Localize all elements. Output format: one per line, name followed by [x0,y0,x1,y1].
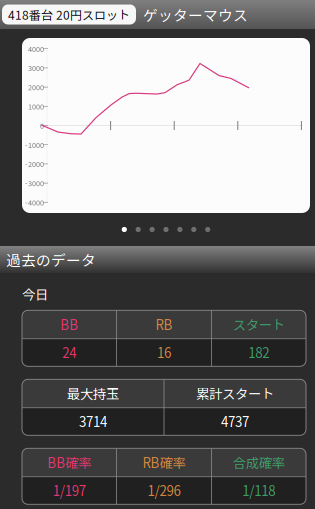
staticText: 最大持玉 [67,384,119,403]
staticText: 1/197 [53,481,86,500]
staticText: 16 [157,343,171,362]
staticText: 今日 [22,284,48,303]
staticText: ゲッターマウス [143,4,248,25]
staticText: 418番台 20円スロット [8,6,130,23]
staticText: 3714 [79,412,107,431]
staticText: 4000 [28,43,44,54]
staticText: 1/296 [147,481,180,500]
staticText: 2000 [28,82,44,92]
staticText: BB [60,315,78,334]
staticText: 1/118 [242,481,275,500]
staticText: 3000 [28,63,44,73]
staticText: RB [155,315,172,334]
staticText: -1000 [25,139,44,150]
staticText: 4737 [221,412,249,431]
staticText: 182 [248,343,269,362]
staticText: 24 [62,343,76,362]
staticText: 累計スタート [196,384,274,403]
staticText: 合成確率 [233,453,285,472]
staticText: RB確率 [142,453,185,472]
staticText: BB確率 [47,453,91,472]
staticText: 0 [40,120,44,131]
staticText: -4000 [25,197,44,208]
staticText: スタート [233,315,285,334]
staticText: -2000 [25,159,44,169]
staticText: 過去のデータ [6,249,96,270]
staticText: -3000 [25,178,44,188]
staticText: 1000 [28,101,44,112]
button[interactable]: 418番台 20円スロット [2,4,136,24]
